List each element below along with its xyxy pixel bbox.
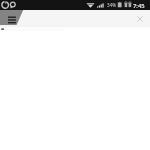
- staticText: 7:45: [133, 2, 145, 10]
- button[interactable]: Open navigation drawer: [2, 13, 22, 26]
- staticText: 34%: [107, 2, 117, 8]
- button[interactable]: [0, 27, 40, 32]
- button[interactable]: Close: [133, 12, 147, 26]
